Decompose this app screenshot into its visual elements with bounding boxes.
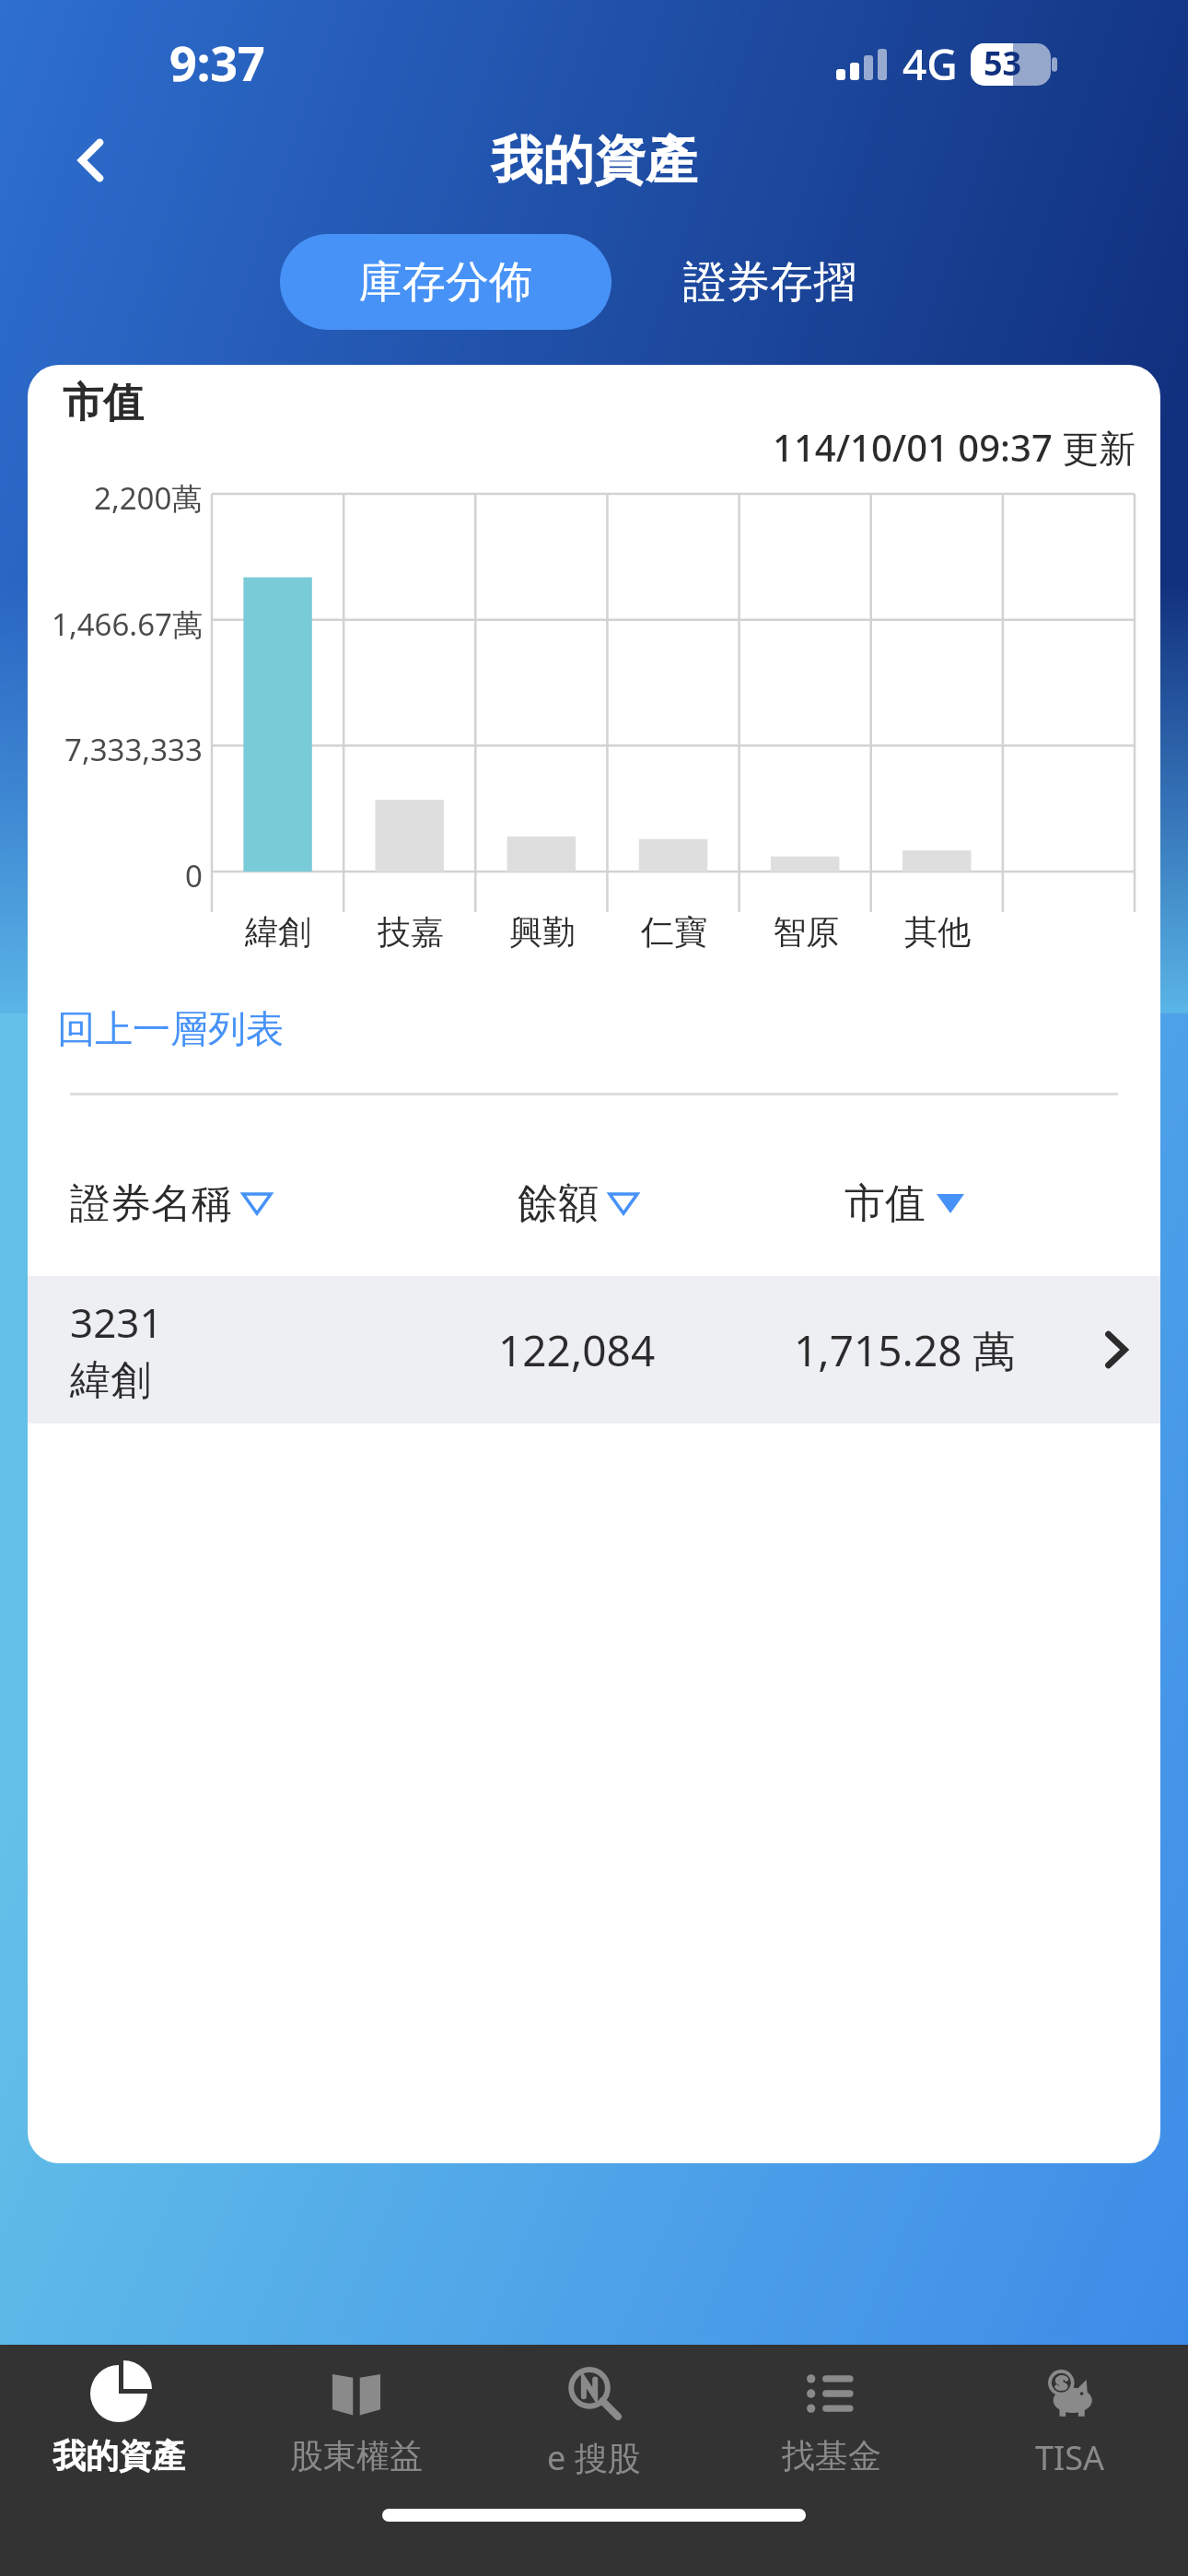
staticText: 122,084 — [498, 1321, 656, 1379]
staticText: 市值 — [63, 378, 144, 428]
staticText: 證券名稱 — [70, 1178, 232, 1229]
staticText: 找基金 — [782, 2435, 881, 2476]
staticText: 114/10/01 09:37 更新 — [773, 422, 1136, 473]
staticText: 9:37 — [169, 29, 265, 95]
staticText: 我的資產 — [491, 128, 697, 193]
staticText: 1,715.28 萬 — [794, 1321, 1016, 1379]
button[interactable]: 庫存分佈 — [280, 234, 611, 330]
button[interactable]: 找基金 — [713, 2345, 950, 2509]
staticText: 仁寶 — [641, 911, 707, 953]
staticText: 興勤 — [509, 911, 576, 953]
staticText: 3231 — [70, 1294, 163, 1350]
button[interactable]: 我的資產 — [0, 2345, 238, 2509]
staticText: 7,333,333 — [64, 729, 203, 770]
staticText: 2,200萬 — [94, 477, 203, 519]
button[interactable]: 股東權益 — [238, 2345, 475, 2509]
button[interactable]: 市值 — [737, 1169, 1072, 1237]
staticText: 其他 — [904, 911, 971, 953]
button[interactable]: 證券名稱 — [28, 1169, 417, 1237]
staticText: 我的資產 — [52, 2435, 185, 2476]
button[interactable]: 證券存摺 — [632, 234, 908, 330]
staticText: 緯創 — [70, 1355, 151, 1406]
staticText: 智原 — [773, 911, 839, 953]
staticText: e 搜股 — [547, 2435, 641, 2480]
button[interactable]: Back — [48, 116, 136, 205]
button[interactable]: TISA — [950, 2345, 1188, 2509]
staticText: 技嘉 — [378, 911, 444, 953]
staticText: 1,466.67萬 — [52, 603, 203, 645]
staticText: TISA — [1035, 2435, 1104, 2480]
staticText: 0 — [185, 855, 203, 896]
staticText: 53 — [984, 41, 1022, 86]
staticText: 4G — [903, 35, 958, 93]
staticText: 證券存摺 — [683, 255, 856, 310]
staticText: 庫存分佈 — [359, 255, 532, 310]
staticText: 市值 — [844, 1178, 926, 1229]
staticText: 餘額 — [518, 1178, 599, 1229]
staticText: 股東權益 — [290, 2435, 423, 2476]
button[interactable]: 餘額 — [417, 1169, 737, 1237]
staticText: 回上一層列表 — [57, 1006, 284, 1054]
button[interactable]: 3231 — [28, 1276, 1160, 1423]
button[interactable]: e 搜股 — [475, 2345, 713, 2509]
button[interactable]: 回上一層列表 — [50, 1001, 291, 1060]
staticText: 緯創 — [245, 911, 311, 953]
